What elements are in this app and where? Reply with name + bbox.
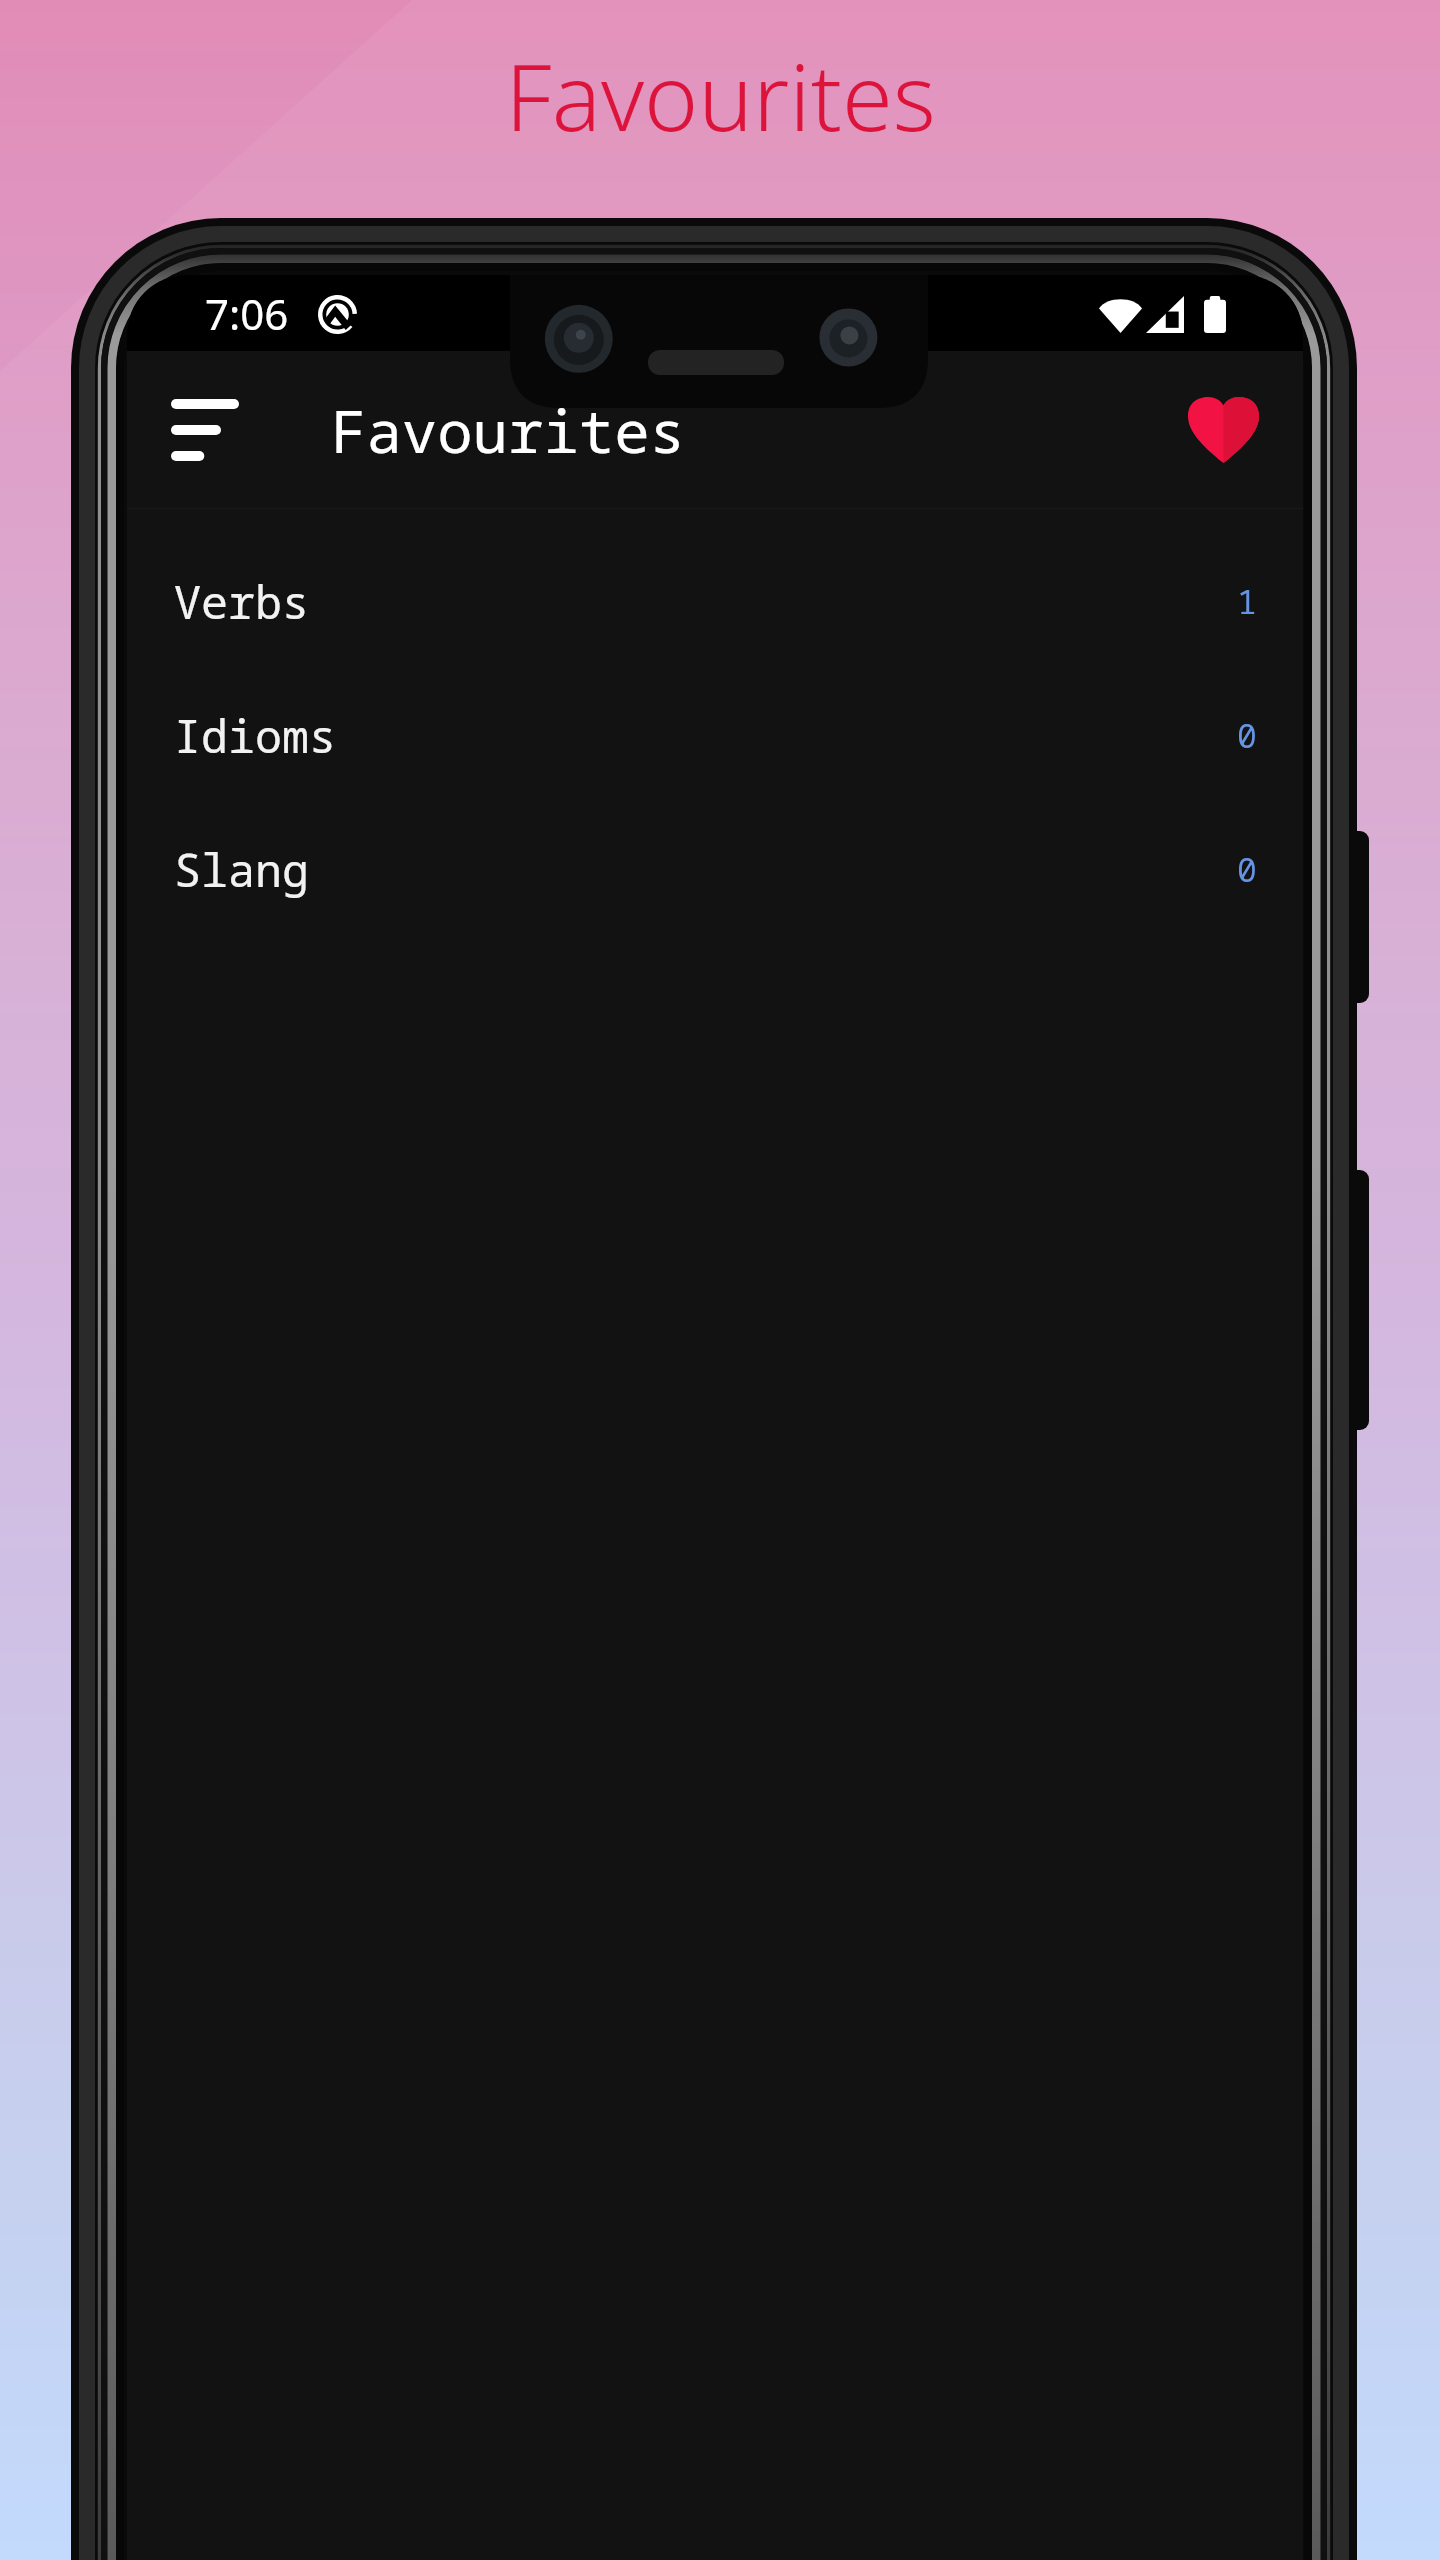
- button[interactable]: Slang: [127, 802, 1303, 936]
- button[interactable]: Idioms: [127, 668, 1303, 802]
- staticText: 1: [1237, 579, 1257, 624]
- staticText: 0: [1237, 713, 1257, 758]
- button[interactable]: Favourites: [1167, 374, 1279, 486]
- button[interactable]: Open navigation menu: [149, 374, 261, 486]
- staticText: 0: [1237, 847, 1257, 892]
- staticText: Favourites: [331, 390, 686, 470]
- staticText: Idioms: [174, 705, 337, 766]
- button[interactable]: Verbs: [127, 534, 1303, 668]
- staticText: Verbs: [174, 571, 310, 632]
- staticText: 7:06: [205, 285, 289, 342]
- staticText: Slang: [174, 839, 310, 900]
- staticText: Favourites: [505, 33, 936, 158]
